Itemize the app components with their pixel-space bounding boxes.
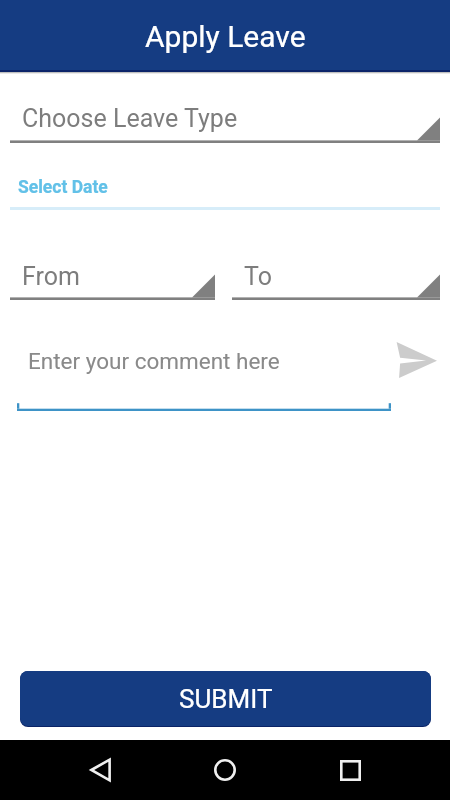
staticText: SUBMIT bbox=[179, 684, 273, 714]
button[interactable]: From bbox=[10, 252, 215, 300]
button[interactable]: Back bbox=[76, 746, 124, 794]
staticText: From bbox=[22, 262, 80, 291]
button[interactable]: SUBMIT bbox=[20, 671, 431, 727]
button[interactable]: To bbox=[232, 252, 440, 300]
staticText: Choose Leave Type bbox=[22, 104, 238, 133]
button[interactable]: Recents bbox=[326, 746, 374, 794]
button[interactable]: Choose Leave Type bbox=[10, 95, 440, 143]
button[interactable] bbox=[17, 340, 391, 411]
staticText: Select Date bbox=[18, 177, 108, 198]
button[interactable]: Home bbox=[201, 746, 249, 794]
button[interactable]: Send bbox=[389, 333, 443, 387]
staticText: Apply Leave bbox=[145, 19, 306, 54]
staticText: To bbox=[244, 262, 272, 291]
staticText: Enter your comment here bbox=[28, 348, 280, 374]
